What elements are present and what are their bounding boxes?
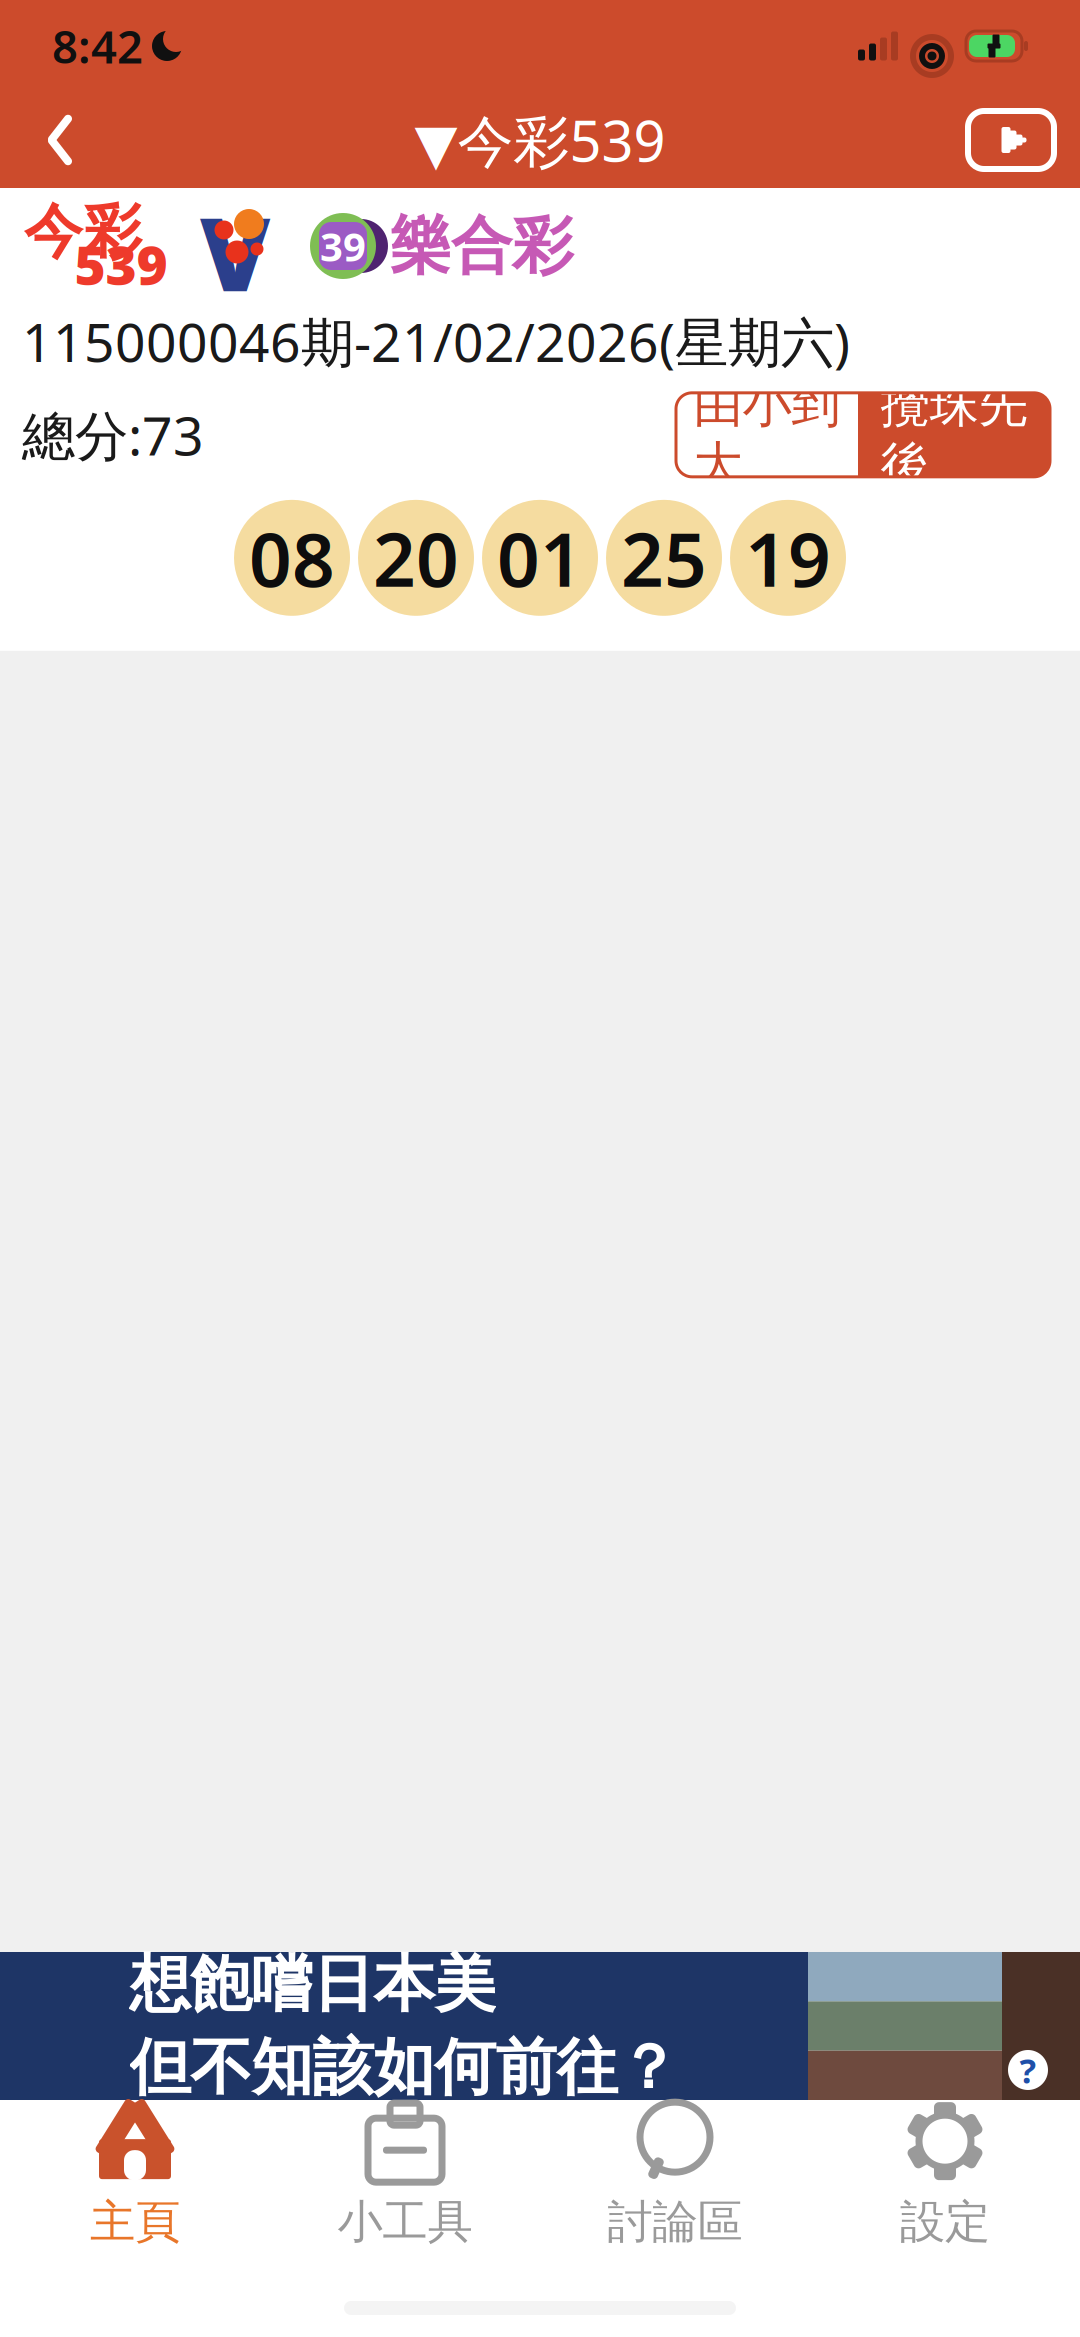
staticText: ?	[1019, 2047, 1036, 2093]
staticText: 539	[74, 229, 167, 299]
button[interactable]: 討論區	[540, 2100, 810, 2250]
staticText: 但不知該如何前往？	[129, 2030, 678, 2105]
staticText: 39	[320, 219, 366, 272]
staticText: 總分:73	[22, 399, 204, 470]
staticText: 攪珠先後	[880, 374, 1027, 495]
button[interactable]: Videos	[956, 94, 1066, 186]
staticText: 8:42	[52, 16, 143, 76]
staticText: 今彩	[24, 196, 142, 268]
staticText: 樂合彩	[390, 208, 573, 284]
staticText: 由小到大	[693, 374, 840, 495]
staticText: 08	[249, 508, 335, 607]
staticText: 小工具	[337, 2194, 472, 2250]
staticText: 20	[373, 508, 459, 607]
button[interactable]: 小工具	[270, 2100, 540, 2250]
button[interactable]: Back	[14, 94, 106, 186]
button[interactable]: 攪珠先後	[858, 393, 1050, 477]
staticText: 01	[497, 508, 583, 607]
button[interactable]: 設定	[810, 2100, 1080, 2250]
staticText: 25	[621, 508, 707, 607]
staticText: 115000046期-21/02/2026(星期六)	[22, 306, 850, 377]
button[interactable]: Advertisement	[0, 1952, 1080, 2100]
staticText: 19	[745, 508, 831, 607]
button[interactable]: 主頁	[0, 2100, 270, 2250]
staticText: ▼今彩539	[414, 103, 665, 177]
staticText: 設定	[900, 2194, 990, 2250]
staticText: V	[200, 185, 270, 319]
button[interactable]: 由小到大	[676, 393, 858, 477]
staticText: 主頁	[90, 2194, 180, 2250]
staticText: 想飽嚐日本美	[129, 1947, 495, 2022]
staticText: 討論區	[607, 2194, 742, 2250]
